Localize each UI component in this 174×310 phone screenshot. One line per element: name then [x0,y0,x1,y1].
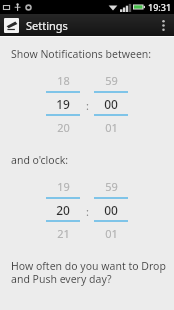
staticText: : [86,98,89,113]
staticText: 59 [105,179,118,194]
staticText: and o'clock: [11,153,69,167]
staticText: 00 [104,202,118,218]
staticText: How often do you want to Drop and Push e… [11,259,166,286]
staticText: 20 [57,120,70,135]
button[interactable]: Decrement to 01 [94,222,128,244]
staticText: 59 [105,73,118,88]
staticText: 19 [56,96,70,112]
button[interactable]: Increment to 59 [94,69,128,91]
staticText: 01 [105,226,118,241]
staticText: : [86,204,89,219]
button[interactable]: Increment to 18 [46,69,80,91]
button[interactable]: Decrement to 21 [46,222,80,244]
staticText: 01 [105,120,118,135]
button[interactable]: More options [156,14,170,36]
button[interactable]: Increment to 19 [46,175,80,197]
button[interactable]: Decrement to 20 [46,116,80,138]
button[interactable]: 20 [46,199,80,220]
staticText: 00 [104,96,118,112]
button[interactable]: 00 [94,93,128,114]
staticText: Show Notifications between: [11,47,152,61]
button[interactable]: 00 [94,199,128,220]
staticText: 19:31 [148,1,172,13]
button[interactable]: 19 [46,93,80,114]
button[interactable]: App icon, navigate up [4,18,19,33]
button[interactable]: Increment to 59 [94,175,128,197]
button[interactable]: Decrement to 01 [94,116,128,138]
staticText: Settings [26,18,68,33]
staticText: 18 [57,73,70,88]
staticText: 20 [56,202,70,218]
staticText: 21 [57,226,70,241]
staticText: 19 [57,179,70,194]
